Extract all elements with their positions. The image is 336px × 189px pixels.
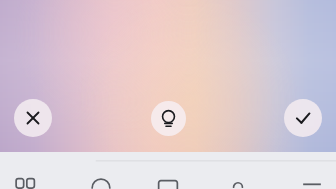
button[interactable]: Apps — [13, 163, 39, 189]
button[interactable]: Cards — [155, 163, 181, 189]
button[interactable]: Suggestions — [151, 101, 186, 136]
button[interactable]: Menu — [299, 163, 325, 189]
button[interactable]: Home — [88, 163, 114, 189]
button[interactable]: Profile — [225, 163, 251, 189]
button[interactable]: Close — [14, 99, 52, 137]
button[interactable]: Confirm — [284, 99, 322, 137]
